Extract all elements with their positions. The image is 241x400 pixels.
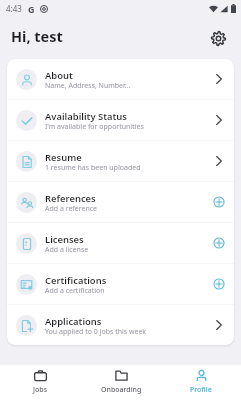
staticText: References [45,192,96,205]
staticText: Onboarding [101,385,142,395]
button[interactable]: Add Licenses [212,236,226,250]
button[interactable]: Licenses [7,223,234,263]
staticText: Availability Status [45,110,127,123]
staticText: Hi, test [11,26,63,46]
staticText: Resume [45,151,82,164]
button[interactable]: About [212,72,226,86]
staticText: 1 resume has been uploaded [45,163,141,173]
staticText: Licenses [45,233,84,246]
button[interactable]: Onboarding [81,365,161,400]
button[interactable]: Availability Status [7,100,234,140]
button[interactable]: Certifications [7,264,234,304]
staticText: You applied to 0 jobs this week [45,327,147,337]
button[interactable]: Applications [7,305,234,345]
button[interactable]: About [7,59,234,99]
button[interactable]: Add Certifications [212,277,226,291]
button[interactable]: Add References [212,195,226,209]
button[interactable]: References [7,182,234,222]
staticText: 4:43 [6,3,22,14]
staticText: Profile [190,385,212,395]
staticText: I'm available for opportunities [45,122,144,132]
staticText: G [28,3,35,15]
button[interactable]: Resume [212,154,226,168]
button[interactable]: Profile [161,365,241,400]
staticText: About [45,69,73,82]
staticText: Applications [45,315,102,328]
staticText: Add a license [45,245,89,255]
staticText: Name, Address, Number... [45,81,131,91]
button[interactable]: Resume [7,141,234,181]
staticText: Certifications [45,274,107,287]
button[interactable]: Applications [212,318,226,332]
button[interactable]: Settings [205,23,231,49]
button[interactable]: Availability Status [212,113,226,127]
staticText: Add a reference [45,204,98,214]
button[interactable]: Jobs [0,365,81,400]
staticText: Jobs [33,385,48,395]
staticText: Add a certification [45,286,105,296]
